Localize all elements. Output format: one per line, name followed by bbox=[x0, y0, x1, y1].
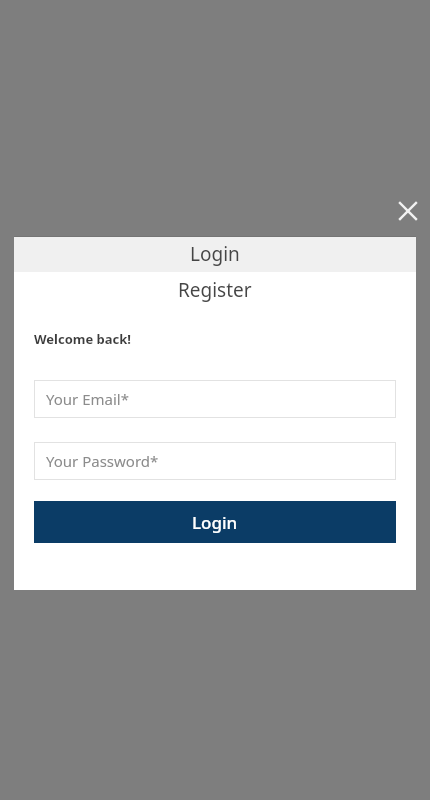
button[interactable]: Your Email* bbox=[34, 380, 396, 418]
button[interactable]: Close bbox=[392, 195, 424, 227]
button[interactable]: Your Password* bbox=[34, 442, 396, 480]
staticText: Login bbox=[192, 511, 238, 534]
staticText: Welcome back! bbox=[34, 330, 132, 348]
staticText: Register bbox=[178, 277, 252, 303]
staticText: Login bbox=[190, 241, 240, 267]
button[interactable]: Register bbox=[14, 272, 416, 308]
staticText: Your Email* bbox=[46, 389, 129, 409]
staticText: Your Password* bbox=[46, 451, 159, 471]
button[interactable]: Login bbox=[14, 236, 416, 272]
button[interactable]: Login bbox=[34, 501, 396, 543]
